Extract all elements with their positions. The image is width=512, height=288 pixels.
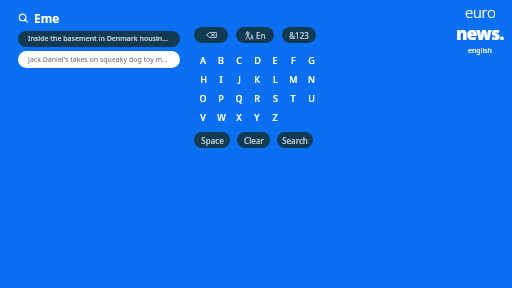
staticText: V <box>200 111 206 123</box>
staticText: P <box>218 92 224 104</box>
staticText: Z <box>272 111 278 123</box>
button[interactable]: J <box>230 71 248 86</box>
staticText: M <box>289 73 298 85</box>
staticText: Eme <box>34 10 60 26</box>
staticText: Y <box>254 111 260 123</box>
button[interactable]: Change language, English <box>236 27 274 43</box>
staticText: W <box>217 111 226 123</box>
button[interactable]: D <box>248 52 266 67</box>
staticText: R <box>254 92 260 104</box>
staticText: news. <box>456 22 504 45</box>
staticText: F <box>291 54 296 66</box>
button[interactable]: H <box>194 71 212 86</box>
staticText: &123 <box>289 30 309 41</box>
staticText: H <box>200 73 207 85</box>
button[interactable]: W <box>212 109 230 124</box>
staticText: E <box>272 54 278 66</box>
button[interactable]: Inside the basement in Denmark housing … <box>18 31 180 47</box>
staticText: Jack Daniel's takes on squeaky dog toy m… <box>28 55 170 65</box>
staticText: C <box>236 54 242 66</box>
staticText: J <box>238 73 241 85</box>
staticText: Clear <box>244 135 264 146</box>
button[interactable]: O <box>194 90 212 105</box>
staticText: O <box>199 92 207 104</box>
button[interactable]: Y <box>248 109 266 124</box>
staticText: Q <box>235 92 243 104</box>
button[interactable]: C <box>230 52 248 67</box>
button[interactable]: I <box>212 71 230 86</box>
staticText: english <box>468 46 492 56</box>
button[interactable]: Clear <box>237 132 270 148</box>
staticText: U <box>308 92 315 104</box>
other: Search <box>18 13 29 24</box>
staticText: Inside the basement in Denmark housing … <box>28 34 170 44</box>
staticText: S <box>273 92 278 104</box>
button[interactable]: Q <box>230 90 248 105</box>
staticText: euro <box>465 2 496 22</box>
button[interactable]: A <box>194 52 212 67</box>
staticText: B <box>218 54 224 66</box>
button[interactable]: L <box>266 71 284 86</box>
button[interactable]: V <box>194 109 212 124</box>
button[interactable]: G <box>302 52 320 67</box>
staticText: G <box>308 54 315 66</box>
staticText: T <box>290 92 296 104</box>
button[interactable]: T <box>284 90 302 105</box>
staticText: Search <box>282 135 308 146</box>
button[interactable]: K <box>248 71 266 86</box>
button[interactable]: R <box>248 90 266 105</box>
button[interactable]: &123 <box>282 27 316 43</box>
staticText: I <box>219 73 223 85</box>
button[interactable]: Backspace <box>194 27 228 43</box>
button[interactable]: E <box>266 52 284 67</box>
button[interactable]: P <box>212 90 230 105</box>
button[interactable]: B <box>212 52 230 67</box>
staticText: L <box>273 73 278 85</box>
button[interactable]: Jack Daniel's takes on squeaky dog toy m… <box>18 51 180 68</box>
button[interactable]: S <box>266 90 284 105</box>
button[interactable]: Search <box>277 132 313 148</box>
button[interactable]: X <box>230 109 248 124</box>
button[interactable]: N <box>302 71 320 86</box>
button[interactable]: U <box>302 90 320 105</box>
button[interactable]: F <box>284 52 302 67</box>
button[interactable]: Space <box>194 132 230 148</box>
staticText: En <box>256 30 266 41</box>
button[interactable]: Search <box>18 9 60 27</box>
staticText: A <box>200 54 206 66</box>
button[interactable]: M <box>284 71 302 86</box>
staticText: K <box>254 73 260 85</box>
staticText: D <box>254 54 261 66</box>
button[interactable]: Z <box>266 109 284 124</box>
staticText: Space <box>201 135 224 146</box>
staticText: N <box>308 73 315 85</box>
staticText: X <box>236 111 242 123</box>
